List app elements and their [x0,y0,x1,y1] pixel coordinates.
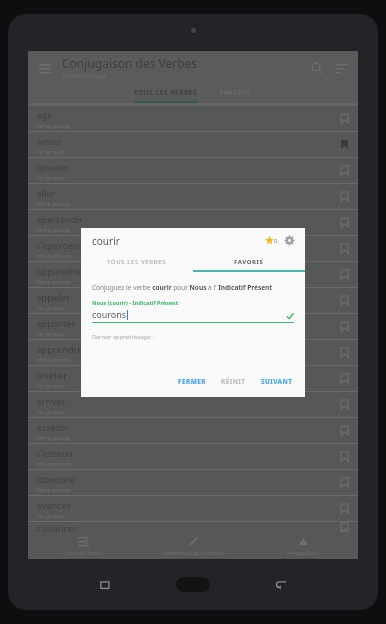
staticText: 1er groupe [36,408,65,415]
staticText: Conjugaison des Verbes [62,55,198,71]
button[interactable]: apercevoir [36,210,349,235]
staticText: 1er groupe [36,512,65,519]
staticText: 3ème groupe [36,252,71,259]
staticText: agir [36,109,54,122]
staticText: Nous (courir) - Indicatif Présent [92,299,179,306]
staticText: SUIVANT [261,377,293,386]
staticText: appeler [36,291,71,304]
other: Back [275,578,288,591]
staticText: 1er groupe [36,330,65,337]
staticText: Dernier apprentissage: - [92,333,155,340]
button[interactable]: SUIVANT [260,375,294,388]
staticText: 3ème groupe [36,226,71,233]
staticText: FAVORIS [234,258,264,266]
button[interactable]: arriver [36,392,349,417]
button[interactable]: Sort [336,62,348,74]
staticText: apparaître [36,265,83,278]
staticText: 1er groupe [36,174,65,181]
button[interactable]: appeler [36,288,349,313]
staticText: apporter [36,317,76,330]
button[interactable]: RÉINIT [220,375,247,388]
staticText: courons [92,308,127,320]
staticText: aller [36,187,56,200]
staticText: FAVORIS [220,88,251,97]
staticText: courir [92,234,120,248]
staticText: apprendre [36,343,83,356]
staticText: attendre [36,473,75,486]
staticText: s'apercevoir [36,239,90,252]
staticText: TOUS LES VERBES [134,88,198,97]
button[interactable]: FAVORIS [220,84,251,97]
button[interactable]: FERMER [177,375,207,388]
staticText: 1er groupe [36,304,65,311]
button[interactable]: Home [176,577,210,592]
staticText: 3ème groupe [36,486,71,493]
button[interactable]: Favoris [265,236,278,245]
button[interactable]: Menu [38,61,52,75]
staticText: Conjuguez le verbe courir pour Nous à l'… [92,283,273,292]
button[interactable]: TOUS LES VERBES [134,84,198,103]
staticText: 0 [274,237,278,245]
staticText: aimer [36,135,62,148]
staticText: Verbes Français [62,72,107,80]
staticText: 3ème groupe [36,460,71,467]
staticText: apercevoir [36,213,83,226]
staticText: 3ème groupe [36,434,71,441]
staticText: arrêter [36,369,68,382]
button[interactable]: s'apercevoir [36,236,349,261]
staticText: arriver [36,395,66,408]
staticText: avancer [36,499,72,512]
staticText: 3ème groupe [36,356,71,363]
staticText: Apprentissage d'écriture [162,549,225,556]
staticText: TOUS LES VERBES [107,258,167,266]
button[interactable]: FAVORIS [193,253,305,270]
staticText: FERMER [178,377,206,386]
staticText: 1er groupe [36,382,65,389]
button[interactable]: arrêter [36,366,349,391]
staticText: 3ème groupe [36,278,71,285]
button[interactable]: Search [311,62,323,74]
staticText: 1er groupe [36,148,65,155]
staticText: ajouter [36,161,69,174]
staticText: 2ème groupe [36,122,71,129]
button[interactable]: TOUS LES VERBES [81,253,193,270]
button[interactable]: apporter [36,314,349,339]
button[interactable]: s'avancer [36,522,349,532]
staticText: Choix de forme [63,549,103,556]
button[interactable]: Paramètres [285,236,294,245]
button[interactable]: apprendre [36,340,349,365]
staticText: 3ème groupe [36,200,71,207]
button[interactable]: apparaître [36,262,349,287]
button[interactable]: Choix de forme [28,532,138,559]
staticText: s'asseoir [36,447,75,460]
staticText: asseoir [36,421,68,434]
staticText: Prépositions [287,549,320,556]
staticText: RÉINIT [221,377,246,386]
other: Recents [98,578,111,591]
staticText: s'avancer [36,522,78,532]
